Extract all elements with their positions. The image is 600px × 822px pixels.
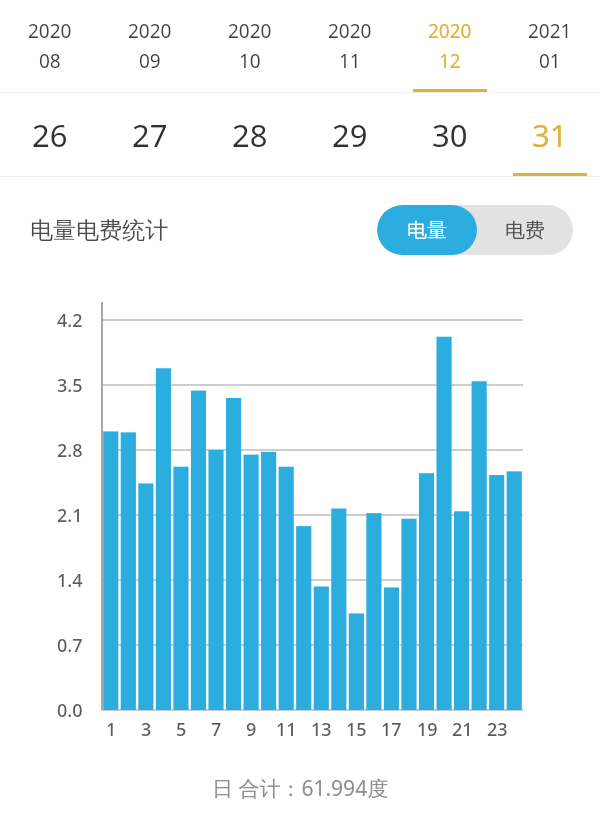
staticText: 电量电费统计 bbox=[30, 216, 168, 245]
staticText: 5 bbox=[176, 717, 187, 742]
staticText: 1 bbox=[106, 717, 117, 742]
staticText: 08 bbox=[39, 48, 61, 74]
button[interactable]: 30 bbox=[400, 93, 500, 176]
staticText: 15 bbox=[346, 717, 367, 742]
staticText: 17 bbox=[381, 717, 402, 742]
button[interactable]: 27 bbox=[100, 93, 200, 176]
staticText: 13 bbox=[311, 717, 332, 742]
staticText: 0.0 bbox=[57, 698, 83, 723]
staticText: 2020 bbox=[328, 18, 372, 44]
staticText: 电量 bbox=[407, 218, 447, 243]
staticText: 2020 bbox=[28, 18, 72, 44]
staticText: 2020 bbox=[128, 18, 172, 44]
button[interactable]: 电费 bbox=[477, 205, 573, 255]
staticText: 29 bbox=[332, 114, 368, 156]
button[interactable]: 2020 bbox=[200, 0, 300, 92]
staticText: 2.8 bbox=[57, 438, 83, 463]
button[interactable]: 28 bbox=[200, 93, 300, 176]
staticText: 4.2 bbox=[57, 308, 83, 333]
staticText: 2020 bbox=[428, 18, 472, 44]
staticText: 31 bbox=[532, 114, 568, 156]
staticText: 12 bbox=[439, 48, 461, 74]
staticText: 27 bbox=[132, 114, 168, 156]
staticText: 26 bbox=[32, 114, 68, 156]
staticText: 2021 bbox=[528, 18, 572, 44]
button[interactable]: 29 bbox=[300, 93, 400, 176]
button[interactable]: 2021 bbox=[500, 0, 600, 92]
staticText: 2020 bbox=[228, 18, 272, 44]
button[interactable]: 2020 bbox=[400, 0, 500, 92]
button[interactable]: 26 bbox=[0, 93, 100, 176]
staticText: 电费 bbox=[505, 218, 545, 243]
staticText: 3.5 bbox=[57, 373, 83, 398]
staticText: 01 bbox=[539, 48, 561, 74]
staticText: 0.7 bbox=[57, 633, 83, 658]
staticText: 09 bbox=[139, 48, 161, 74]
staticText: 1.4 bbox=[57, 568, 83, 593]
staticText: 10 bbox=[239, 48, 261, 74]
staticText: 3 bbox=[141, 717, 152, 742]
staticText: 9 bbox=[246, 717, 257, 742]
staticText: 11 bbox=[276, 717, 297, 742]
button[interactable]: 2020 bbox=[0, 0, 100, 92]
staticText: 23 bbox=[487, 717, 508, 742]
staticText: 11 bbox=[339, 48, 361, 74]
button[interactable]: 电量 bbox=[377, 205, 477, 255]
button[interactable]: 2020 bbox=[100, 0, 200, 92]
button[interactable]: 31 bbox=[500, 93, 600, 176]
staticText: 日 合计：61.994度 bbox=[212, 774, 389, 803]
staticText: 2.1 bbox=[57, 503, 83, 528]
staticText: 28 bbox=[232, 114, 268, 156]
staticText: 30 bbox=[432, 114, 468, 156]
staticText: 7 bbox=[211, 717, 222, 742]
button[interactable]: 2020 bbox=[300, 0, 400, 92]
staticText: 19 bbox=[417, 717, 438, 742]
staticText: 21 bbox=[452, 717, 473, 742]
